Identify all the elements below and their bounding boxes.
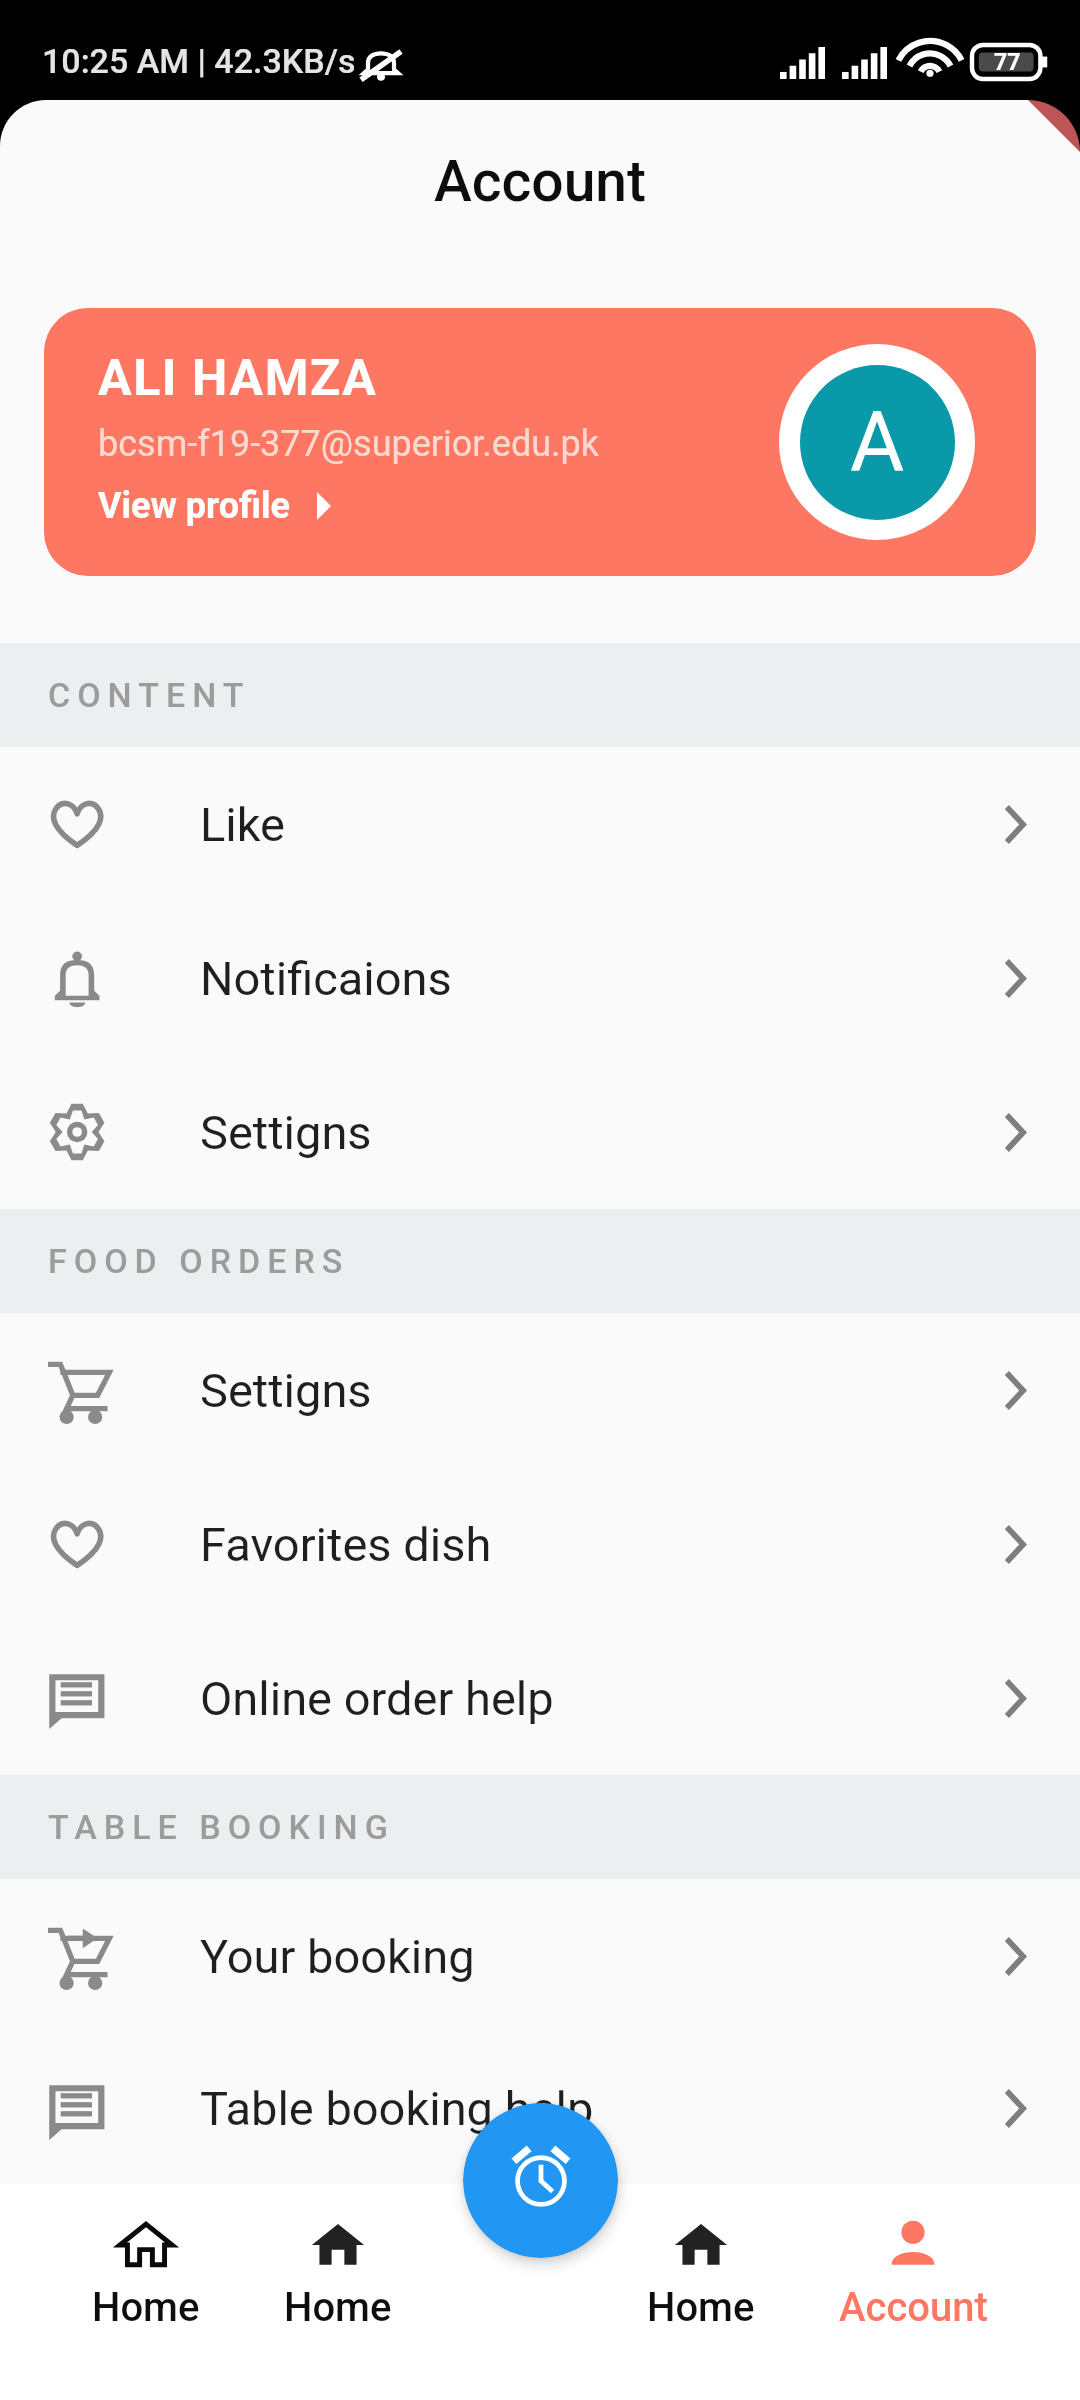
staticText: Home <box>647 2284 755 2331</box>
button[interactable]: Settigns <box>0 1313 1080 1467</box>
staticText: Account <box>839 2284 988 2331</box>
button[interactable]: Alarm <box>463 2103 618 2258</box>
button[interactable]: Settigns <box>0 1055 1080 1209</box>
staticText: View profile <box>98 485 291 527</box>
staticText: CONTENT <box>48 675 251 715</box>
button[interactable]: Notificaions <box>0 901 1080 1055</box>
staticText: TABLE BOOKING <box>48 1807 395 1847</box>
staticText: Home <box>284 2284 392 2331</box>
staticText: Your booking <box>200 1929 475 1984</box>
button[interactable]: Home <box>61 2216 231 2331</box>
staticText: ALI HAMZA <box>98 349 378 408</box>
button[interactable]: Your booking <box>0 1879 1080 2033</box>
staticText: bcsm-f19-377@superior.edu.pk <box>98 423 600 465</box>
button[interactable]: Account <box>828 2216 998 2331</box>
staticText: 77 <box>994 49 1021 76</box>
staticText: Settigns <box>200 1105 372 1160</box>
staticText: Home <box>92 2284 200 2331</box>
staticText: Table booking help <box>200 2081 594 2136</box>
staticText: Like <box>200 797 286 852</box>
button[interactable]: Home <box>616 2216 786 2331</box>
staticText: 10:25 AM | 42.3KB/s <box>42 41 356 81</box>
staticText: Online order help <box>200 1671 554 1726</box>
staticText: Notificaions <box>200 951 452 1006</box>
staticText: Account <box>434 148 647 215</box>
staticText: Favorites dish <box>200 1517 492 1572</box>
staticText: FOOD ORDERS <box>48 1241 350 1281</box>
button[interactable]: ALI HAMZA <box>44 308 1036 576</box>
button[interactable]: Home <box>253 2216 423 2331</box>
button[interactable]: Favorites dish <box>0 1467 1080 1621</box>
button[interactable]: Online order help <box>0 1621 1080 1775</box>
button[interactable]: Table booking help <box>0 2033 1080 2184</box>
staticText: Settigns <box>200 1363 372 1418</box>
staticText: A <box>850 394 905 491</box>
button[interactable]: Like <box>0 747 1080 901</box>
